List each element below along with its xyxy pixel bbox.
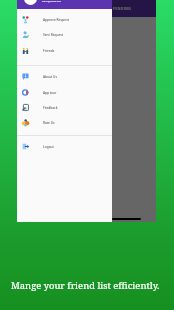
staticText: PENDING xyxy=(113,6,132,11)
button[interactable]: App tour xyxy=(17,85,112,100)
staticText: Sent Request xyxy=(43,33,64,37)
other: Profile photo xyxy=(24,0,37,5)
staticText: App tour xyxy=(43,91,57,95)
staticText: anush@gmail.com xyxy=(42,0,62,3)
staticText: About Us xyxy=(43,75,57,79)
button[interactable]: About Us xyxy=(17,69,112,84)
staticText: Mange your friend list efficiently. xyxy=(11,279,160,292)
staticText: Approve Request xyxy=(43,18,69,22)
button[interactable]: Sent Request xyxy=(17,27,112,42)
staticText: Logout xyxy=(43,145,54,149)
button[interactable]: Logout xyxy=(17,139,112,154)
staticText: Rate Us xyxy=(43,121,55,125)
button[interactable]: Feedback xyxy=(17,100,112,115)
button[interactable]: Approve Request xyxy=(17,12,112,27)
staticText: Feedback xyxy=(43,106,58,110)
button[interactable]: Friends xyxy=(17,43,112,58)
button[interactable]: Rate Us xyxy=(17,115,112,130)
staticText: Friends xyxy=(43,49,55,53)
